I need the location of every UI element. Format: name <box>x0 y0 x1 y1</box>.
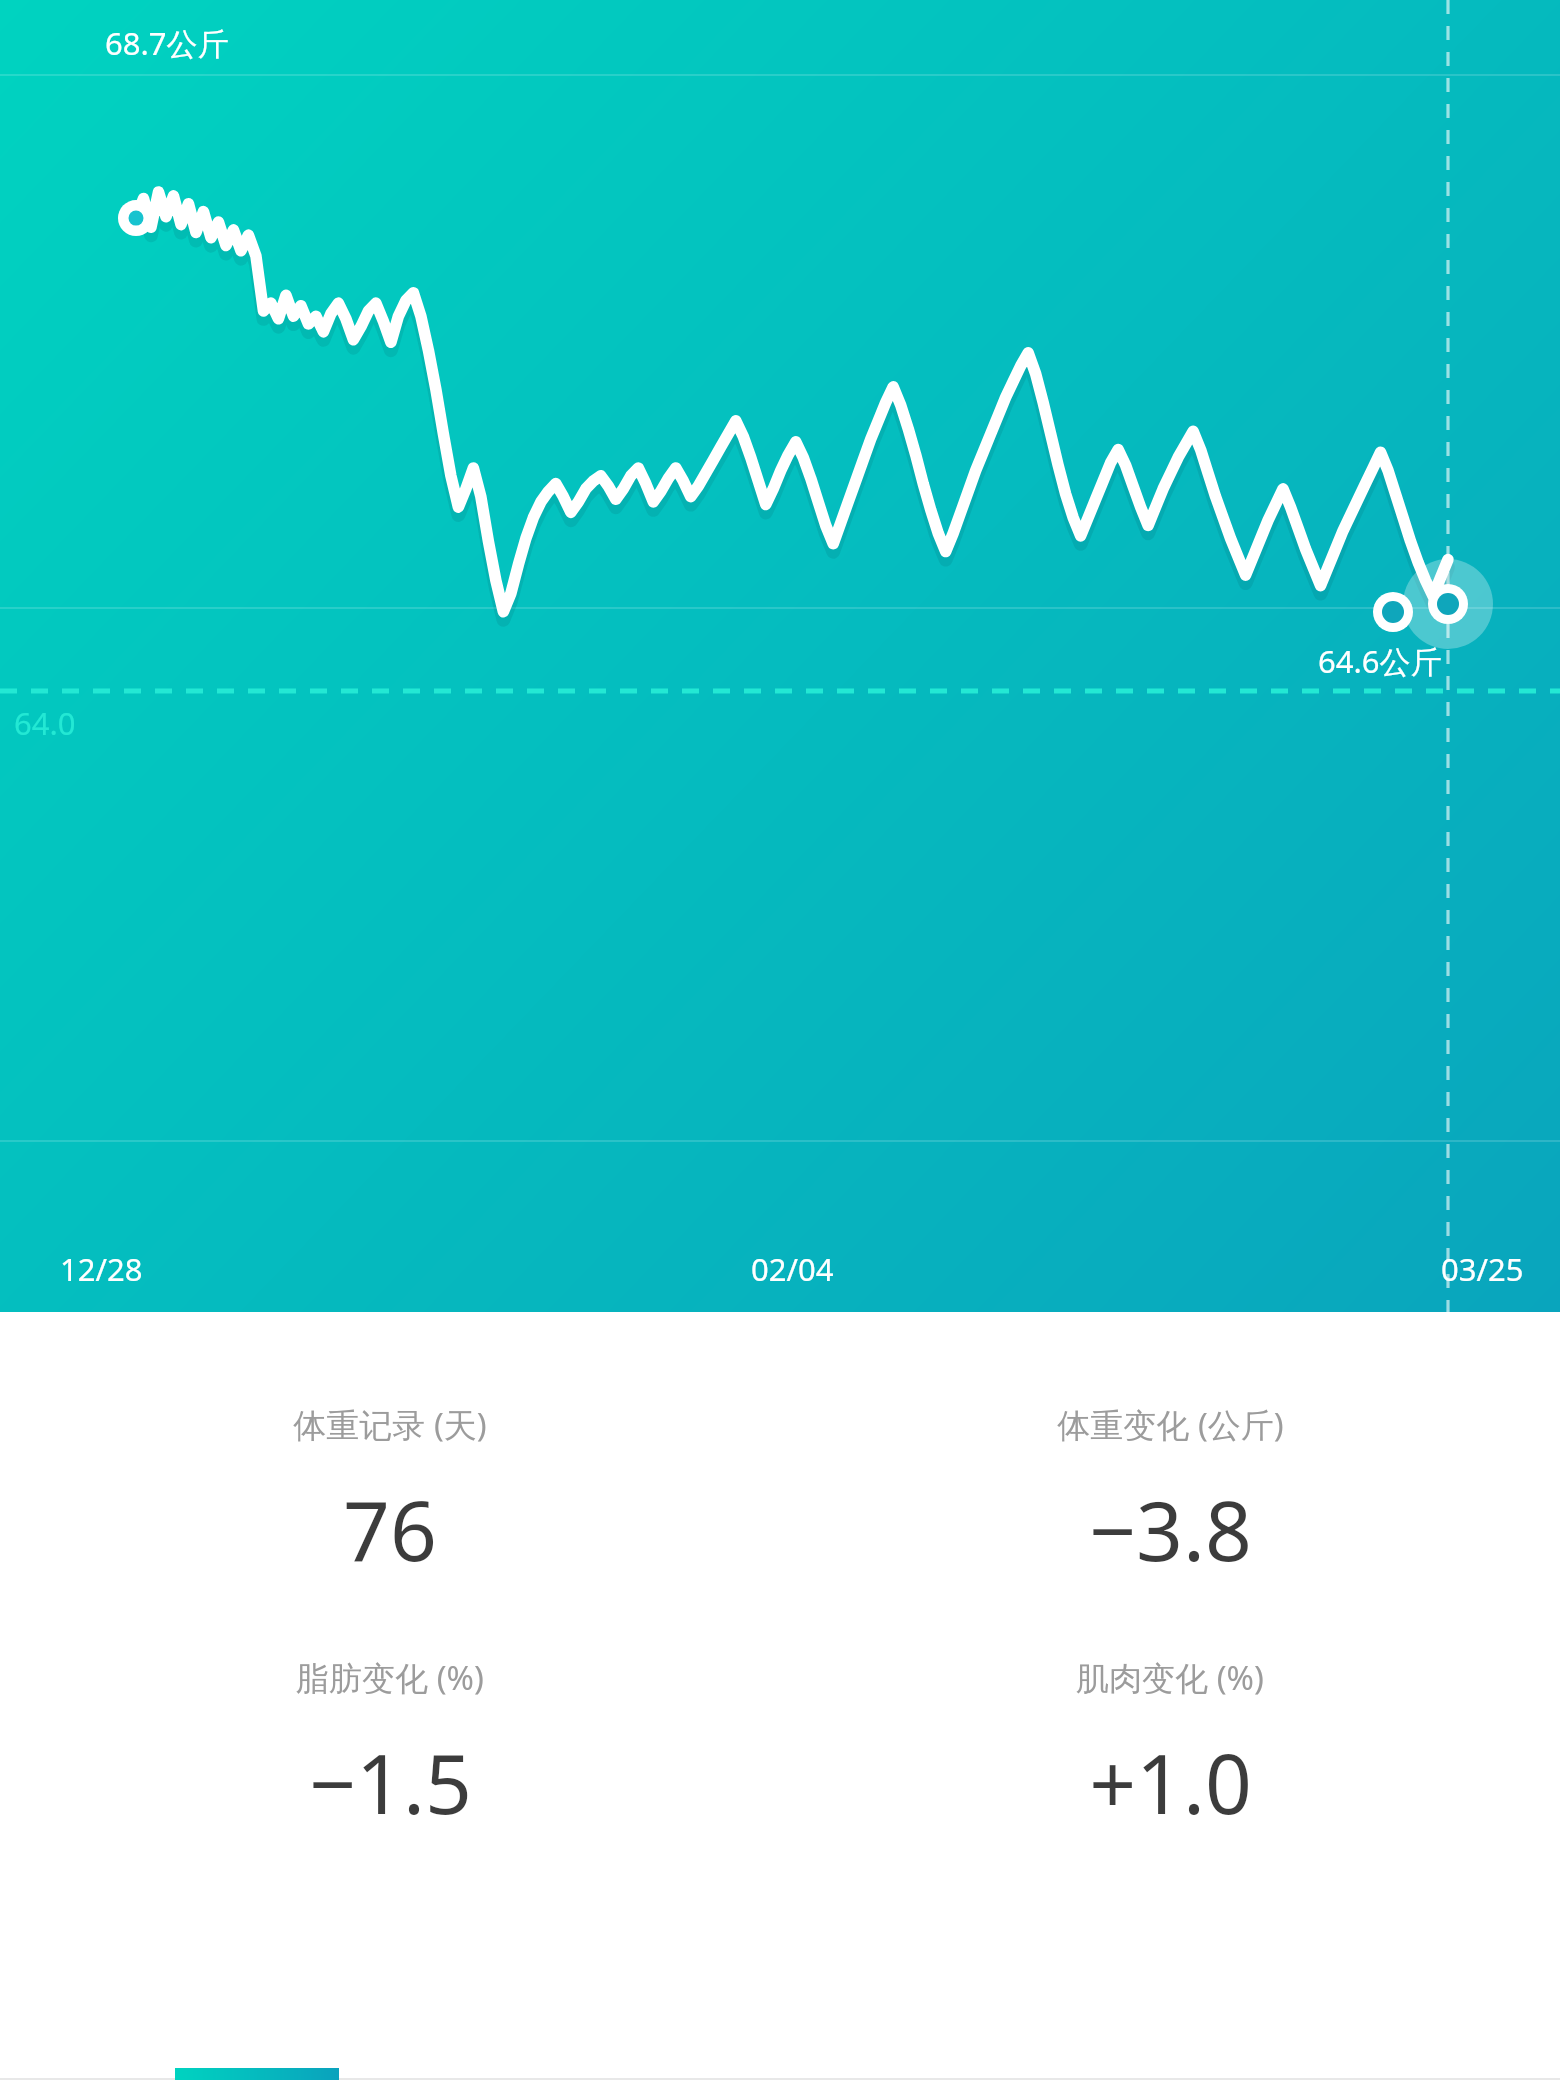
button[interactable]: 体重记录 (天) <box>0 1398 780 1589</box>
staticText: 03/25 <box>1441 1248 1524 1290</box>
button[interactable]: 体重变化 (公斤) <box>780 1398 1560 1589</box>
staticText: +1.0 <box>1089 1726 1252 1838</box>
staticText: 76 <box>343 1473 437 1585</box>
button[interactable]: 肌肉变化 (%) <box>780 1651 1560 1842</box>
button[interactable]: Selected tab <box>175 2068 339 2080</box>
staticText: −1.5 <box>309 1726 472 1838</box>
staticText: 64.6公斤 <box>1318 640 1442 682</box>
staticText: 64.0 <box>14 702 76 744</box>
staticText: 肌肉变化 (%) <box>1076 1655 1264 1700</box>
button[interactable]: 68.7公斤 <box>0 0 1560 1312</box>
staticText: −3.8 <box>1089 1473 1252 1585</box>
staticText: 脂肪变化 (%) <box>296 1655 484 1700</box>
staticText: 68.7公斤 <box>105 22 229 64</box>
staticText: 体重变化 (公斤) <box>1057 1402 1284 1447</box>
staticText: 02/04 <box>751 1248 834 1290</box>
staticText: 体重记录 (天) <box>293 1402 487 1447</box>
staticText: 12/28 <box>60 1248 143 1290</box>
button[interactable]: 脂肪变化 (%) <box>0 1651 780 1842</box>
